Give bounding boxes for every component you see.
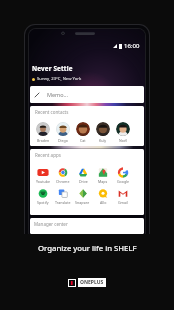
button[interactable]: Drive	[75, 168, 91, 184]
button[interactable]: Maps	[95, 168, 111, 184]
staticText: Allo	[100, 200, 107, 205]
staticText: Diego	[58, 138, 68, 143]
staticText: Recent contacts	[35, 109, 69, 115]
staticText: Google	[117, 179, 130, 184]
staticText: Never Settle	[32, 64, 73, 73]
staticText: Snapseed	[75, 200, 91, 205]
staticText: Memo...	[47, 91, 68, 98]
staticText: 16:00	[124, 42, 140, 50]
staticText: Cat	[80, 138, 86, 143]
staticText: Drive	[79, 179, 88, 184]
staticText: Spotify	[37, 200, 49, 205]
staticText: Recent apps	[35, 152, 61, 158]
button[interactable]: Youtube	[35, 168, 51, 184]
staticText: Kuly	[99, 138, 107, 143]
staticText: Chrome	[56, 179, 70, 184]
button[interactable]: Noél	[115, 122, 131, 143]
staticText: Organize your life in SHELF	[38, 243, 137, 254]
button[interactable]: Recent contacts	[30, 106, 144, 146]
staticText: Sunny, 23°C, New York	[37, 76, 82, 82]
button[interactable]: OnePlus	[68, 278, 106, 287]
button[interactable]: Cat	[75, 122, 91, 143]
button[interactable]: Kuly	[95, 122, 111, 143]
button[interactable]: Memo...	[30, 86, 144, 103]
button[interactable]: Recent apps	[30, 149, 144, 215]
button[interactable]: Google	[115, 168, 131, 184]
button[interactable]: Chrome	[55, 168, 71, 184]
staticText: Noél	[119, 138, 127, 143]
button[interactable]: Spotify	[35, 189, 51, 205]
staticText: ONEPLUS	[80, 279, 104, 286]
staticText: Manager center	[34, 221, 68, 227]
button[interactable]: Manager center	[30, 218, 144, 234]
staticText: Translate	[55, 200, 71, 205]
button[interactable]: Snapseed	[75, 189, 91, 205]
staticText: Gmail	[118, 200, 128, 205]
staticText: Maps	[98, 179, 108, 184]
button[interactable]: Braden	[35, 122, 51, 143]
button[interactable]: Diego	[55, 122, 71, 143]
button[interactable]: Translate	[55, 189, 71, 205]
staticText: Youtube	[36, 179, 51, 184]
button[interactable]: Gmail	[115, 189, 131, 205]
staticText: Braden	[37, 138, 50, 143]
button[interactable]: Allo	[95, 189, 111, 205]
